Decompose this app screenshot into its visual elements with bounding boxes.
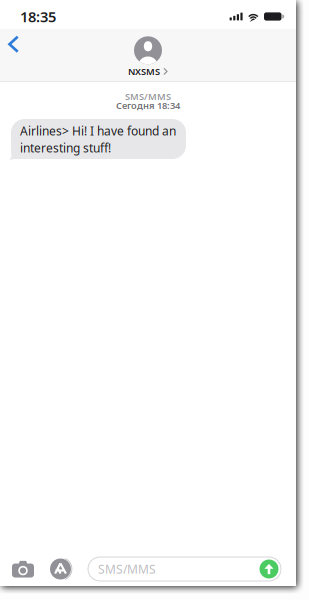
button[interactable]: NXSMS bbox=[118, 33, 178, 78]
button[interactable]: Camera bbox=[12, 560, 34, 577]
button[interactable]: Back bbox=[0, 33, 31, 65]
staticText: NXSMS bbox=[128, 65, 160, 78]
staticText: interesting stuff! bbox=[20, 140, 111, 156]
staticText: Airlines> Hi! I have found an bbox=[20, 123, 176, 139]
staticText: SMS/MMS bbox=[98, 561, 156, 577]
staticText: Сегодня 18:34 bbox=[116, 99, 180, 112]
button[interactable]: SMS/MMS bbox=[88, 557, 281, 581]
staticText: SMS/MMS bbox=[125, 90, 171, 103]
staticText: 18:35 bbox=[20, 7, 56, 26]
button[interactable]: Apps bbox=[50, 558, 71, 579]
